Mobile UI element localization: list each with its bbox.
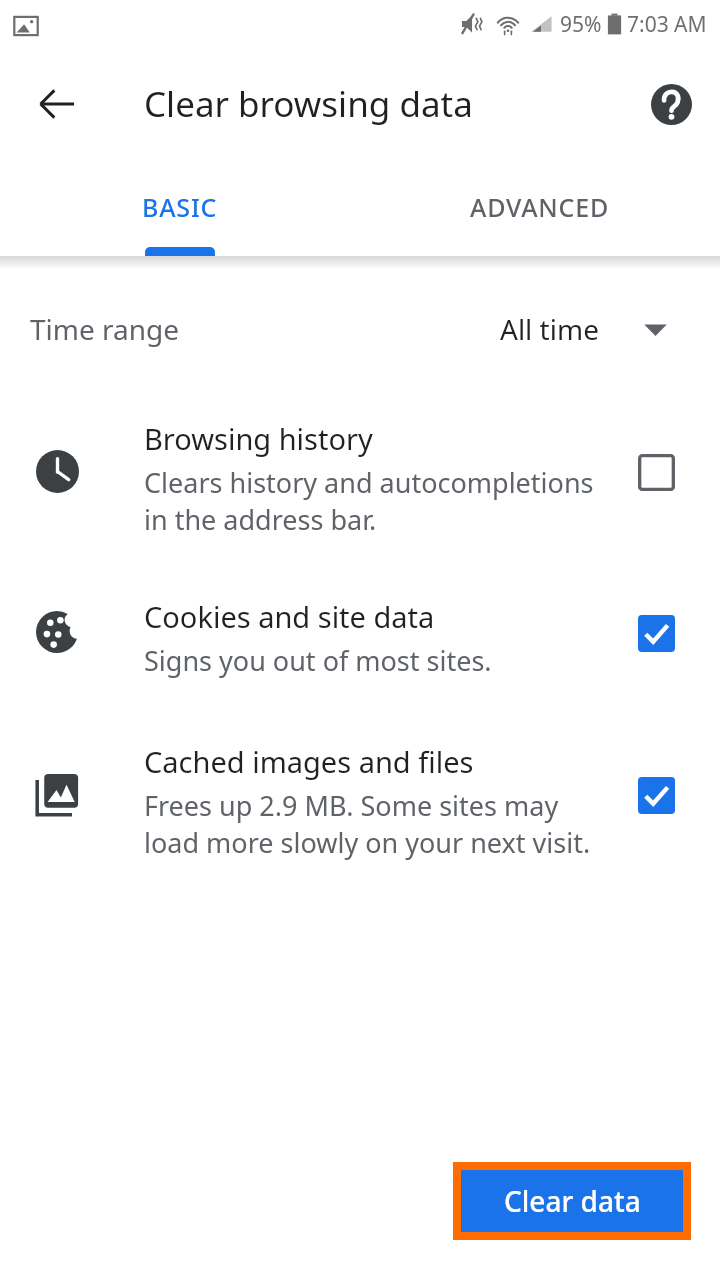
button[interactable]: Back [29, 76, 85, 132]
staticText: 95% [560, 10, 602, 39]
button[interactable] [0, 583, 720, 703]
button[interactable] [0, 282, 720, 374]
button[interactable]: Browsing history unchecked [626, 442, 686, 502]
button[interactable]: Clear data [461, 1170, 683, 1232]
button[interactable]: Cookies and site data checked [626, 603, 686, 663]
staticText: 7:03 AM [627, 10, 707, 39]
button[interactable]: ADVANCED [360, 162, 720, 252]
button[interactable]: Help [643, 76, 699, 132]
staticText: ADVANCED [470, 190, 610, 224]
button[interactable] [0, 728, 720, 878]
staticText: Clear browsing data [144, 80, 473, 128]
staticText: Frees up 2.9 MB. Some sites may [144, 787, 559, 824]
staticText: Clear data [504, 1182, 641, 1220]
button[interactable]: Cached images and files checked [626, 765, 686, 825]
button[interactable] [0, 405, 720, 555]
staticText: All time [500, 310, 599, 348]
staticText: Cookies and site data [144, 597, 435, 636]
staticText: Browsing history [144, 419, 373, 458]
staticText: in the address bar. [144, 501, 377, 538]
staticText: Clears history and autocompletions [144, 464, 594, 501]
staticText: Cached images and files [144, 742, 474, 781]
staticText: load more slowly on your next visit. [144, 824, 591, 861]
staticText: Time range [30, 310, 180, 348]
button[interactable]: BASIC [0, 162, 360, 252]
staticText: Signs you out of most sites. [144, 642, 492, 679]
staticText: BASIC [142, 190, 218, 224]
